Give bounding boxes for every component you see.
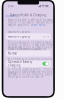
staticText: Battery — [8, 14, 17, 18]
staticText: Battery health is affected by many — [8, 18, 53, 22]
staticText: Maximum Capacity — [8, 30, 30, 34]
button[interactable]: Back to Battery — [6, 13, 18, 19]
staticText: usage between charges. — [8, 48, 42, 51]
staticText: from your daily charging routine so it — [8, 70, 57, 77]
staticText: 9:41 — [8, 4, 15, 8]
staticText: may be applied. — [8, 23, 31, 27]
staticText: Battery Health & Charging — [10, 13, 46, 17]
staticText: This is a measure of battery capacity — [8, 41, 54, 44]
staticText: relative to when it was new. Lower — [8, 43, 55, 46]
staticText: Your battery is currently supporting — [8, 57, 57, 61]
button[interactable]: Normal — [6, 50, 51, 56]
staticText: capacity may result in fewer hours of — [8, 45, 56, 49]
button[interactable]: Learn more… — [31, 23, 48, 27]
staticText: can wait to finish charging past 80% — [8, 73, 57, 76]
staticText: factors. Performance management — [8, 21, 53, 24]
staticText: Normal — [8, 52, 17, 55]
staticText: Peak Performance Capability — [8, 47, 46, 51]
staticText: Maximum Capacity — [8, 35, 30, 38]
button[interactable]: Optimized Battery Charging — [6, 60, 51, 67]
staticText: To reduce battery aging, iPhone learns — [8, 68, 54, 75]
staticText: normal peak performance. — [8, 60, 43, 63]
staticText: 87% — [43, 35, 49, 38]
button[interactable]: Maximum Capacity — [6, 33, 51, 40]
staticText: Learn more… — [31, 23, 48, 27]
staticText: Optimized Battery Charging — [8, 60, 32, 67]
staticText: until you need to use it. — [8, 75, 44, 79]
